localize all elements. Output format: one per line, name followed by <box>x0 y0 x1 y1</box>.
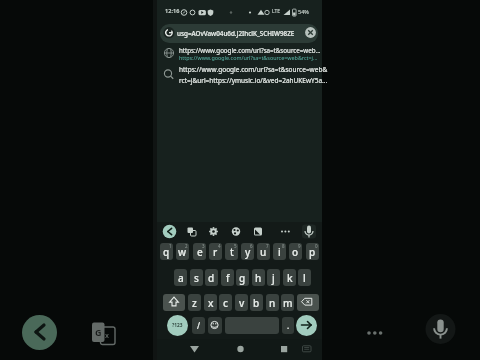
staticText: z <box>192 296 197 310</box>
staticText: a <box>178 271 184 285</box>
button[interactable] <box>157 64 322 90</box>
staticText: e <box>197 245 203 259</box>
staticText: i <box>278 245 281 259</box>
staticText: h <box>255 271 262 285</box>
staticText: d <box>208 271 215 285</box>
staticText: 9 <box>298 243 301 249</box>
button[interactable] <box>163 294 185 311</box>
button[interactable]: . <box>282 317 294 334</box>
button[interactable] <box>157 44 322 64</box>
staticText: c <box>223 296 228 310</box>
staticText: . <box>287 320 290 331</box>
button[interactable]: l <box>298 269 311 286</box>
staticText: p <box>309 245 316 259</box>
staticText: / <box>197 320 201 331</box>
staticText: s <box>194 271 199 285</box>
button[interactable]: s <box>190 269 203 286</box>
button[interactable]: f <box>221 269 234 286</box>
staticText: l <box>303 271 306 285</box>
staticText: 3 <box>202 243 205 249</box>
button[interactable]: e <box>193 243 206 260</box>
staticText: q <box>163 245 170 259</box>
staticText: x <box>105 331 109 341</box>
button[interactable] <box>160 24 318 43</box>
button[interactable]: a <box>174 269 187 286</box>
button[interactable]: x <box>204 294 217 311</box>
staticText: 0 <box>315 243 318 249</box>
staticText: f <box>226 271 230 285</box>
staticText: ?123 <box>172 322 183 329</box>
button[interactable]: d <box>205 269 218 286</box>
staticText: g <box>239 271 246 285</box>
staticText: w <box>178 245 187 259</box>
staticText: 7 <box>266 243 269 249</box>
button[interactable]: i <box>273 243 286 260</box>
staticText: n <box>269 296 276 310</box>
button[interactable]: t <box>225 243 238 260</box>
button[interactable]: n <box>266 294 279 311</box>
button[interactable] <box>296 315 317 336</box>
staticText: u <box>260 245 267 259</box>
button[interactable]: z <box>188 294 201 311</box>
staticText: G <box>95 326 102 338</box>
staticText: m <box>283 296 293 310</box>
staticText: b <box>253 296 260 310</box>
staticText: https://www.google.com/url?sa=t&source=w… <box>179 54 318 61</box>
button[interactable]: c <box>219 294 232 311</box>
button[interactable]: y <box>241 243 254 260</box>
button[interactable] <box>22 315 57 350</box>
staticText: j <box>272 271 275 285</box>
staticText: v <box>239 296 245 310</box>
button[interactable]: o <box>289 243 302 260</box>
button[interactable]: k <box>283 269 296 286</box>
staticText: 2 <box>185 243 188 249</box>
button[interactable]: v <box>235 294 248 311</box>
button[interactable]: u <box>257 243 270 260</box>
button[interactable]: m <box>281 294 294 311</box>
button[interactable]: w <box>176 243 189 260</box>
staticText: 8 <box>282 243 285 249</box>
staticText: y <box>245 245 251 259</box>
staticText: usg=AOvVaw04u6d.J2IhclK_SCHIW98ZE <box>177 29 295 38</box>
button[interactable]: j <box>267 269 280 286</box>
button[interactable]: r <box>209 243 222 260</box>
button[interactable]: ?123 <box>167 315 188 336</box>
button[interactable] <box>208 317 222 334</box>
button[interactable]: b <box>250 294 263 311</box>
button[interactable]: h <box>252 269 265 286</box>
staticText: 12:16 <box>165 7 180 15</box>
staticText: o <box>292 245 299 259</box>
staticText: LTE <box>272 8 281 15</box>
staticText: x <box>208 296 214 310</box>
staticText: r <box>213 245 218 259</box>
button[interactable]: p <box>306 243 319 260</box>
staticText: https://www.google.com/url?sa=t&source=w… <box>179 46 321 54</box>
staticText: k <box>287 271 293 285</box>
staticText: 4 <box>218 243 221 249</box>
button[interactable] <box>297 294 319 311</box>
staticText: 6 <box>250 243 253 249</box>
staticText: 54% <box>298 8 309 15</box>
staticText: 1 <box>169 243 172 249</box>
staticText: rct=j&url=https://ymusic.io/&ved=2ahUKEw… <box>179 76 328 85</box>
button[interactable]: q <box>160 243 173 260</box>
staticText: t <box>230 245 234 259</box>
button[interactable]: / <box>192 317 205 334</box>
staticText: 5 <box>234 243 237 249</box>
staticText: https://www.google.com/url?sa=t&source=w… <box>179 65 328 74</box>
button[interactable]: g <box>236 269 249 286</box>
